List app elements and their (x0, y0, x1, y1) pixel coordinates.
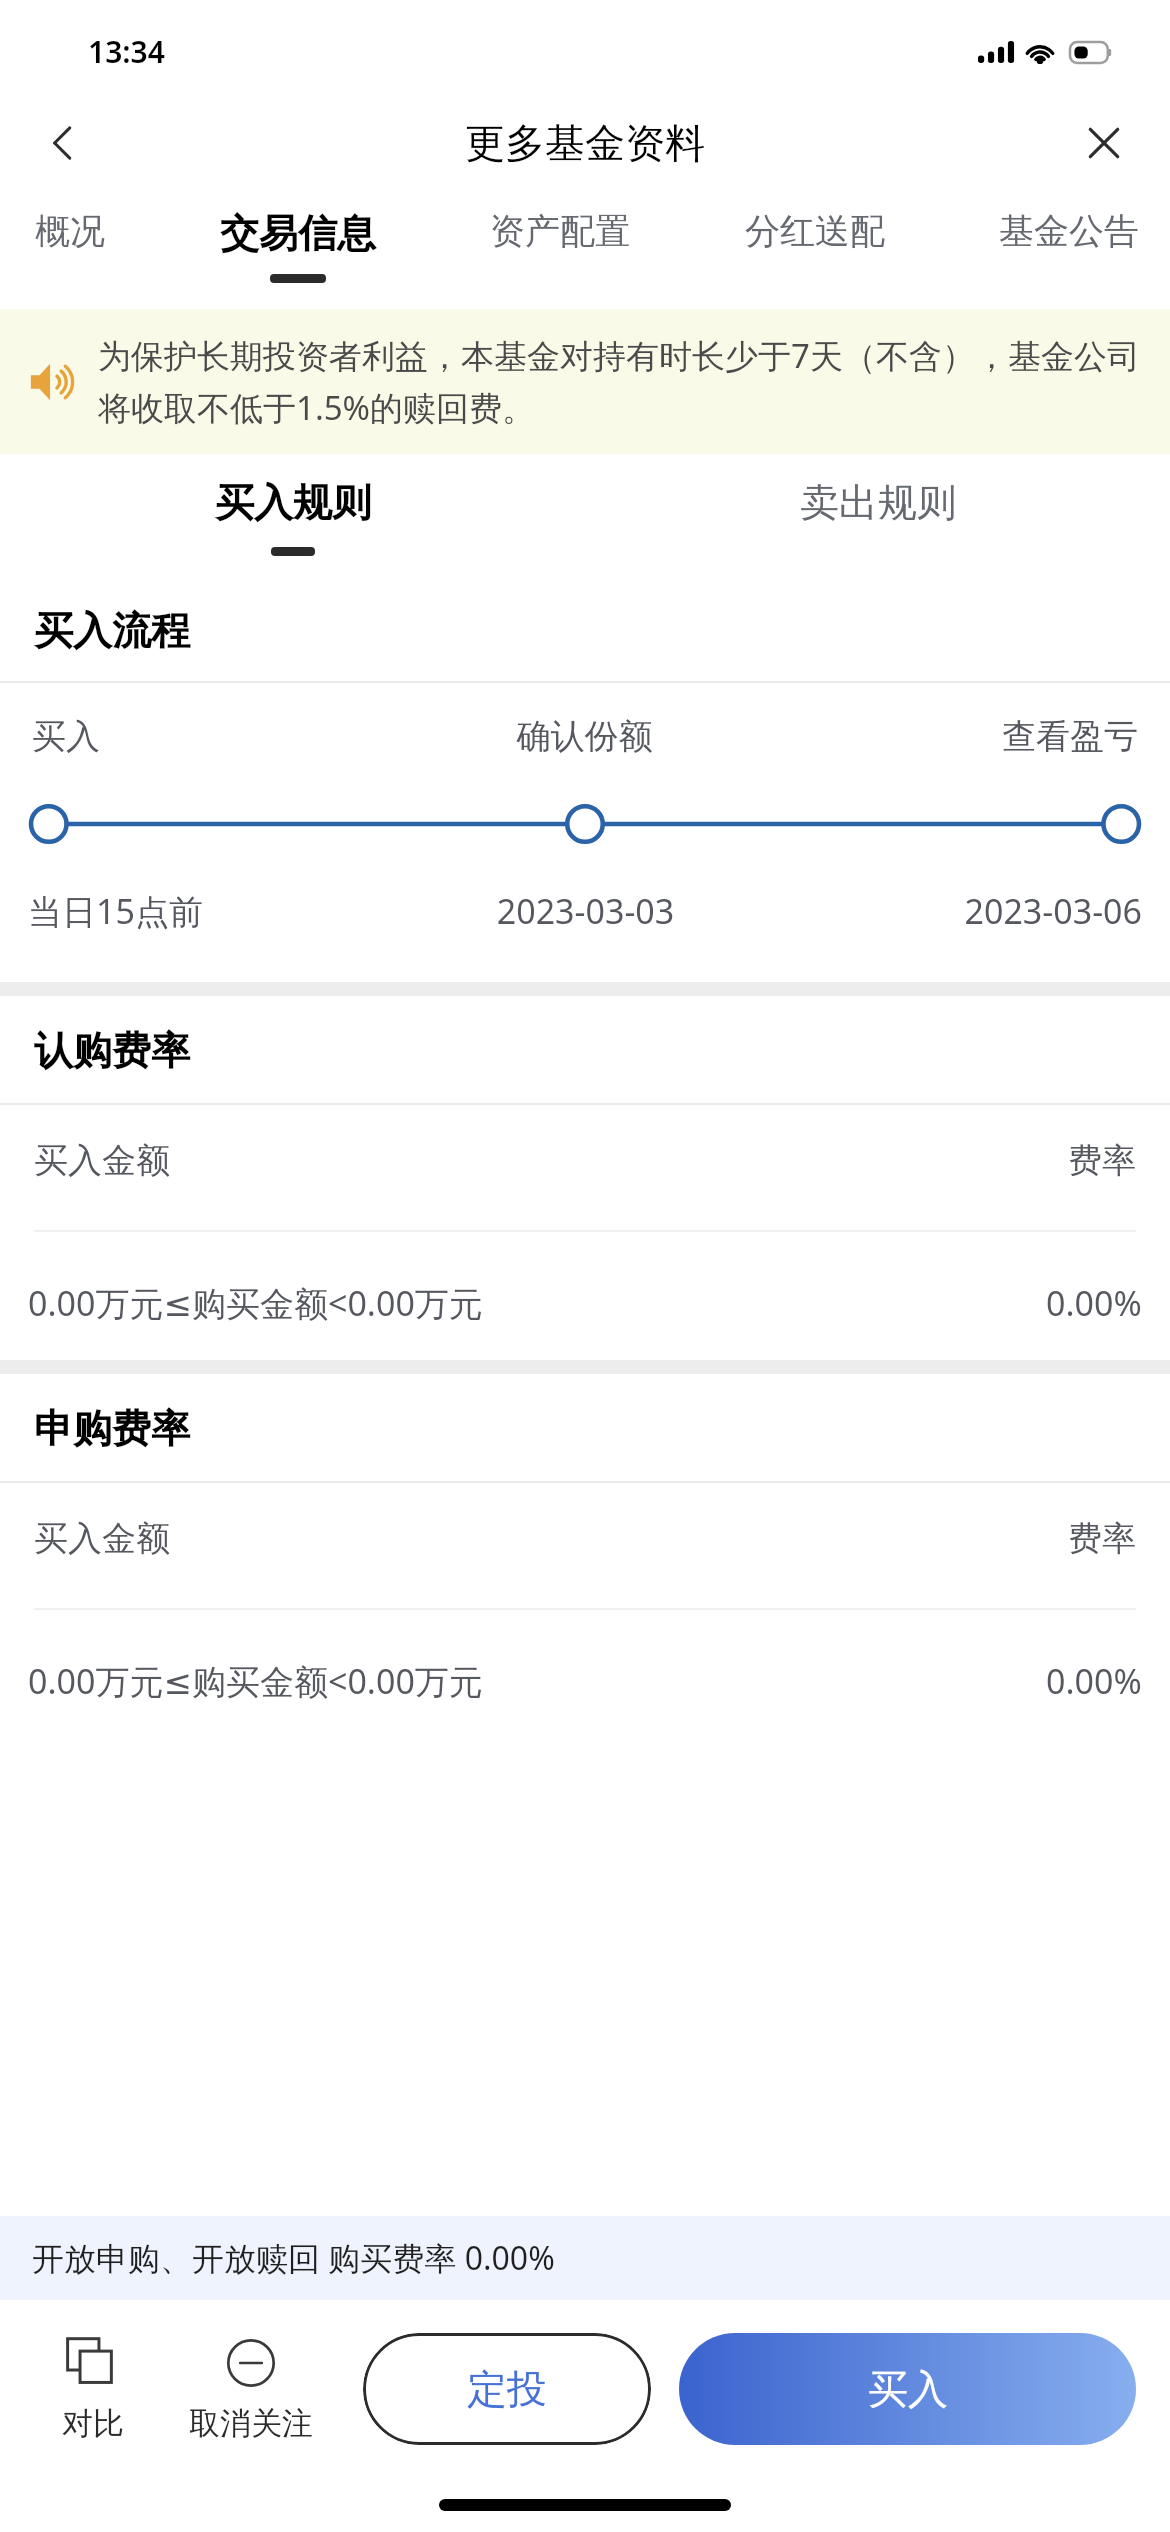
button[interactable]: 取消关注 (158, 2336, 343, 2443)
staticText: 买入金额 (34, 1517, 1068, 1560)
staticText: 概况 (35, 209, 105, 253)
staticText: 取消关注 (189, 2404, 313, 2443)
staticText: 定投 (467, 2364, 547, 2414)
staticText: 资产配置 (490, 209, 630, 253)
staticText: 费率 (1068, 1139, 1136, 1182)
staticText: 基金公告 (999, 209, 1139, 253)
staticText: 交易信息 (220, 209, 376, 258)
button[interactable]: 概况 (30, 191, 110, 269)
button[interactable]: 买入规则 (0, 454, 585, 576)
staticText: 2023-03-03 (400, 888, 771, 934)
staticText: 买入金额 (34, 1139, 1068, 1182)
staticText: 0.00万元≤购买金额<0.00万元 (28, 1658, 1046, 1704)
button[interactable]: Back (24, 103, 104, 183)
staticText: 申购费率 (34, 1404, 190, 1453)
staticText: 更多基金资料 (465, 118, 705, 168)
button[interactable]: 资产配置 (485, 191, 635, 269)
staticText: 2023-03-06 (771, 888, 1142, 934)
staticText: 卖出规则 (800, 478, 956, 527)
button[interactable]: 卖出规则 (585, 454, 1170, 576)
staticText: 对比 (62, 2404, 124, 2443)
staticText: 0.00% (1046, 1280, 1142, 1326)
staticText: 买入规则 (215, 478, 371, 527)
staticText: 0.00% (1046, 1658, 1142, 1704)
staticText: 0.00万元≤购买金额<0.00万元 (28, 1280, 1046, 1326)
button[interactable]: 交易信息 (215, 191, 381, 283)
button[interactable]: 基金公告 (994, 191, 1144, 269)
staticText: 当日15点前 (28, 888, 400, 934)
staticText: 查看盈亏 (769, 715, 1138, 758)
staticText: 买入流程 (34, 606, 190, 655)
button[interactable]: 买入 (679, 2333, 1136, 2445)
staticText: 买入 (868, 2364, 948, 2414)
staticText: 买入 (32, 715, 400, 758)
staticText: 开放申购、开放赎回 购买费率 0.00% (32, 2236, 555, 2280)
staticText: 分红送配 (745, 209, 885, 253)
staticText: 为保护长期投资者利益，本基金对持有时长少于7天（不含），基金公司将收取不低于1.… (98, 333, 1144, 430)
button[interactable]: 对比 (28, 2336, 158, 2443)
button[interactable]: 定投 (363, 2333, 651, 2445)
staticText: 认购费率 (34, 1026, 190, 1075)
button[interactable]: Close (1064, 103, 1144, 183)
button[interactable]: 分红送配 (740, 191, 890, 269)
staticText: 费率 (1068, 1517, 1136, 1560)
staticText: 13:34 (88, 31, 165, 72)
staticText: 确认份额 (400, 715, 769, 758)
